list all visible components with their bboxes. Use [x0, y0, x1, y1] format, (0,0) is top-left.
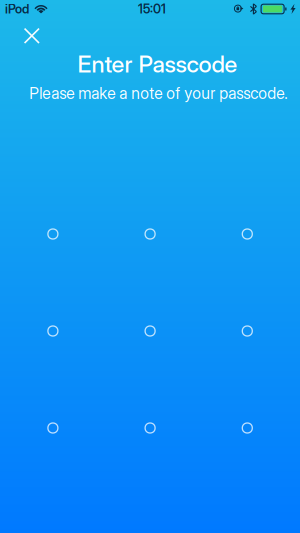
staticText: 15:01	[138, 1, 166, 17]
button[interactable]: Pattern point 1	[30, 211, 76, 257]
button[interactable]: Pattern point 9	[224, 405, 270, 451]
button[interactable]: Pattern point 8	[127, 405, 173, 451]
staticText: Please make a note of your passcode.	[29, 84, 287, 103]
button[interactable]: Close	[11, 15, 53, 57]
button[interactable]: Pattern point 3	[224, 211, 270, 257]
staticText: Enter Passcode	[78, 50, 238, 78]
button[interactable]: Pattern point 6	[224, 308, 270, 354]
button[interactable]: Pattern point 7	[30, 405, 76, 451]
button[interactable]: Pattern point 4	[30, 308, 76, 354]
button[interactable]: Pattern point 5	[127, 308, 173, 354]
button[interactable]: Pattern point 2	[127, 211, 173, 257]
staticText: iPod	[5, 1, 29, 17]
